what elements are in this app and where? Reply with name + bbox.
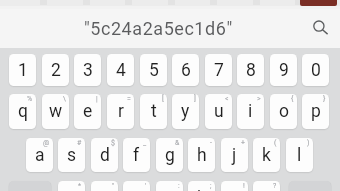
staticText: \	[63, 95, 66, 103]
button[interactable]: x	[91, 181, 118, 191]
button[interactable]: u	[205, 94, 232, 129]
button[interactable]: o	[270, 94, 297, 129]
staticText: @	[43, 139, 50, 147]
button[interactable]: 3	[74, 54, 101, 86]
button[interactable]: f	[123, 138, 150, 172]
staticText: i	[248, 101, 253, 122]
staticText: o	[279, 101, 289, 122]
staticText: &	[175, 139, 180, 147]
staticText: )	[307, 139, 310, 147]
button[interactable]: 6	[172, 54, 199, 86]
staticText: 6	[181, 60, 191, 81]
staticText: l	[297, 145, 302, 166]
staticText: 4	[116, 60, 126, 81]
staticText: <	[225, 95, 229, 103]
button[interactable]: 2	[42, 54, 69, 86]
button[interactable]: l	[286, 138, 313, 172]
staticText: *	[78, 182, 82, 190]
button[interactable]: s	[58, 138, 85, 172]
button[interactable]: 1	[9, 54, 36, 86]
staticText: 3	[83, 60, 93, 81]
button[interactable]: 9	[270, 54, 297, 86]
staticText: }	[323, 95, 326, 103]
staticText: 1	[18, 60, 28, 81]
staticText: #	[77, 139, 82, 147]
button[interactable]: n	[221, 181, 248, 191]
staticText: 5	[149, 60, 159, 81]
staticText: t	[151, 101, 157, 122]
staticText: _	[143, 139, 147, 147]
button[interactable]: z	[58, 181, 85, 191]
button[interactable]: 0	[302, 54, 329, 86]
staticText: ;	[210, 182, 212, 190]
staticText: 7	[214, 60, 224, 81]
staticText: g	[165, 145, 175, 166]
staticText: $	[111, 139, 115, 147]
staticText: [	[162, 95, 164, 103]
button[interactable]: q	[9, 94, 36, 129]
button[interactable]: 5	[140, 54, 167, 86]
button[interactable]: 4	[107, 54, 134, 86]
button[interactable]: d	[91, 138, 118, 172]
staticText: "	[112, 182, 115, 190]
button[interactable]: 7	[205, 54, 232, 86]
staticText: u	[214, 101, 224, 122]
staticText: -	[210, 139, 212, 147]
button[interactable]: i	[237, 94, 264, 129]
button[interactable]: Record	[300, 0, 337, 6]
staticText: p	[311, 101, 321, 122]
button[interactable]: Search	[305, 12, 333, 40]
staticText: {	[291, 95, 294, 103]
button[interactable]: w	[42, 94, 69, 129]
staticText: f	[133, 145, 140, 166]
staticText: |	[96, 95, 98, 103]
button[interactable]: b	[188, 181, 215, 191]
button[interactable]: p	[302, 94, 329, 129]
staticText: 0	[311, 60, 321, 81]
staticText: d	[100, 145, 110, 166]
staticText: b	[197, 188, 207, 191]
button[interactable]: m	[253, 181, 280, 191]
button[interactable]: c	[123, 181, 150, 191]
staticText: 9	[279, 60, 289, 81]
staticText: h	[197, 145, 207, 166]
staticText: "5c24a2a5ec1d6"	[84, 18, 233, 39]
staticText: >	[257, 95, 261, 103]
button[interactable]: a	[26, 138, 53, 172]
staticText: ?	[273, 182, 277, 190]
staticText: y	[181, 101, 190, 122]
staticText: %	[27, 95, 33, 103]
staticText: e	[83, 101, 93, 122]
button[interactable]: h	[188, 138, 215, 172]
staticText: 2	[51, 60, 61, 81]
staticText: w	[49, 101, 63, 122]
staticText: (	[274, 139, 277, 147]
staticText: r	[118, 101, 124, 122]
button[interactable]: e	[74, 94, 101, 129]
button[interactable]: j	[221, 138, 248, 172]
button[interactable]: k	[253, 138, 280, 172]
staticText: 8	[246, 60, 256, 81]
staticText: k	[262, 145, 271, 166]
staticText: !	[243, 182, 245, 190]
staticText: '	[145, 182, 147, 190]
button[interactable]: y	[172, 94, 199, 129]
staticText: =	[127, 95, 131, 103]
staticText: s	[67, 145, 77, 166]
staticText: :	[178, 182, 180, 190]
button[interactable]: 8	[237, 54, 264, 86]
staticText: q	[18, 101, 28, 122]
button[interactable]: r	[107, 94, 134, 129]
button[interactable]: g	[156, 138, 183, 172]
button[interactable]: v	[156, 181, 183, 191]
button[interactable]: t	[140, 94, 167, 129]
staticText: j	[232, 145, 237, 166]
